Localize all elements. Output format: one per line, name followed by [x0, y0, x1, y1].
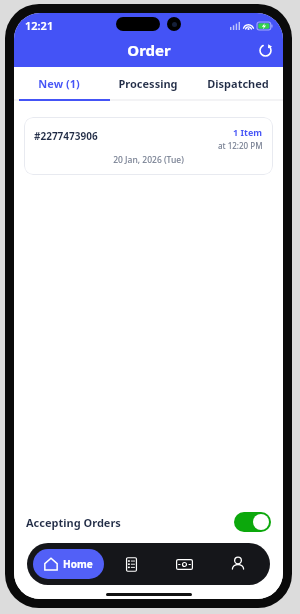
button[interactable]: Payments: [158, 543, 211, 585]
button[interactable]: Refresh: [252, 37, 278, 63]
button[interactable]: Processing: [103, 67, 193, 99]
staticText: at 12:20 PM: [218, 140, 263, 151]
button[interactable]: New (1): [14, 67, 103, 99]
staticText: Order: [127, 40, 171, 60]
staticText: 1 Item: [233, 126, 263, 138]
staticText: 12:21: [25, 18, 54, 33]
staticText: Home: [63, 557, 93, 571]
staticText: #2277473906: [34, 129, 218, 143]
staticText: 20 Jan, 2026 (Tue): [34, 154, 263, 166]
staticText: Accepting Orders: [26, 515, 121, 530]
staticText: Processing: [118, 76, 178, 91]
button[interactable]: Home: [33, 549, 104, 579]
button[interactable]: Orders: [104, 543, 158, 585]
button[interactable]: #2277473906: [24, 117, 273, 175]
staticText: New (1): [38, 76, 80, 91]
staticText: Dispatched: [207, 76, 269, 91]
button[interactable]: Profile: [211, 543, 264, 585]
button[interactable]: Accepting Orders toggle: [234, 512, 271, 532]
button[interactable]: Dispatched: [193, 67, 283, 99]
